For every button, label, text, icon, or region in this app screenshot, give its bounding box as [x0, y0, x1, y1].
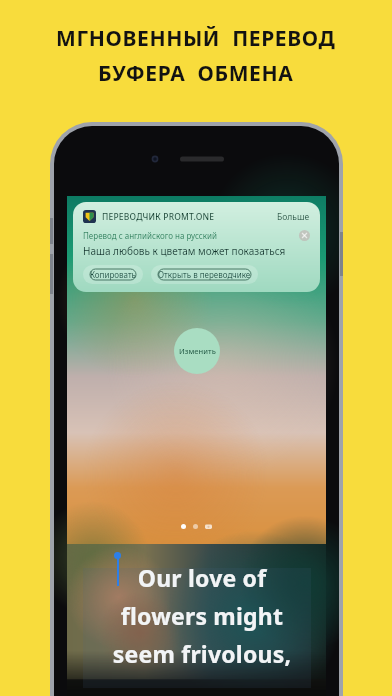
staticText: Изменить [179, 346, 216, 356]
staticText: Перевод с английского на русский [83, 230, 217, 241]
staticText: seem frivolous, [89, 638, 315, 669]
staticText: Our love of [89, 562, 315, 593]
staticText: ПЕРЕВОДЧИК PROMT.ONE [102, 211, 215, 223]
button[interactable]: Больше [277, 211, 310, 223]
staticText: Копировать [90, 269, 136, 280]
staticText: Больше [277, 211, 310, 223]
button[interactable]: Копировать [83, 265, 143, 284]
staticText: МГНОВЕННЫЙ ПЕРЕВОД [56, 24, 336, 53]
button[interactable]: Изменить [174, 328, 220, 374]
button[interactable]: ПЕРЕВОДЧИК PROMT.ONE [73, 202, 320, 292]
button[interactable]: Камера [205, 523, 212, 530]
staticText: Наша любовь к цветам может показаться ле… [83, 244, 310, 258]
staticText: БУФЕРА ОБМЕНА [98, 59, 294, 88]
staticText: flowers might [89, 600, 315, 631]
button[interactable]: Открыть в переводчике [151, 265, 258, 284]
button[interactable]: Закрыть [299, 230, 310, 241]
staticText: Открыть в переводчике [158, 269, 251, 280]
